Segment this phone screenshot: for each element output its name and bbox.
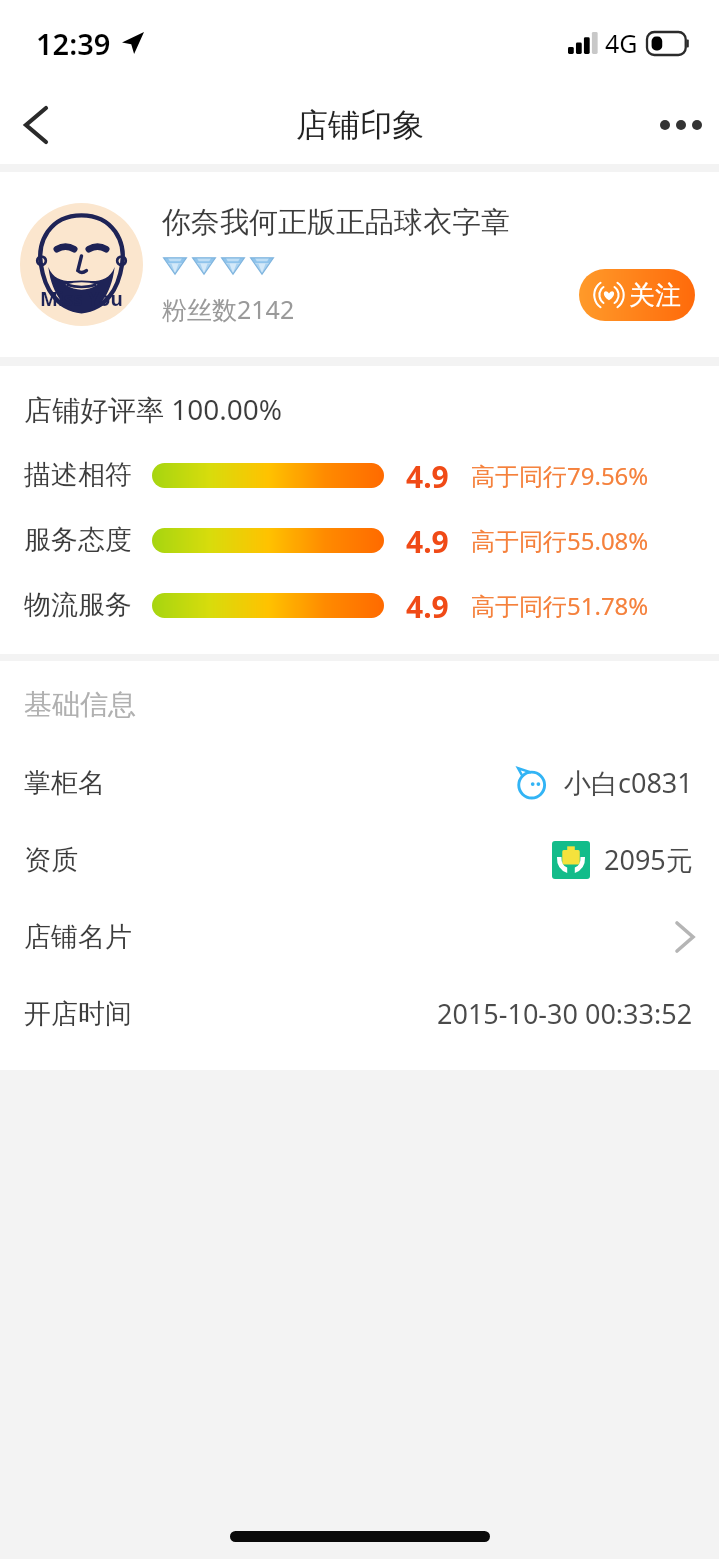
staticText: 店铺好评率 100.00% bbox=[24, 390, 283, 428]
staticText: 服务态度 bbox=[24, 523, 132, 557]
button[interactable]: 店铺名片 bbox=[0, 898, 719, 975]
staticText: 高于同行55.08% bbox=[471, 524, 649, 557]
staticText: 4.9 bbox=[406, 521, 449, 559]
staticText: 4.9 bbox=[406, 586, 449, 624]
button[interactable]: 关注 bbox=[579, 269, 695, 321]
staticText: 店铺印象 bbox=[296, 105, 424, 145]
staticText: 物流服务 bbox=[24, 588, 132, 622]
staticText: 小白c0831 bbox=[564, 764, 693, 801]
staticText: 基础信息 bbox=[24, 687, 136, 722]
staticText: 高于同行51.78% bbox=[471, 589, 649, 622]
staticText: 资质 bbox=[24, 843, 78, 877]
staticText: 关注 bbox=[629, 279, 681, 312]
button[interactable]: Back bbox=[0, 89, 72, 161]
staticText: 高于同行79.56% bbox=[471, 459, 649, 492]
button[interactable]: More options bbox=[643, 87, 719, 163]
staticText: 4G bbox=[605, 26, 638, 60]
staticText: 描述相符 bbox=[24, 458, 132, 492]
staticText: Miss You bbox=[40, 286, 123, 312]
staticText: 店铺名片 bbox=[24, 920, 132, 954]
staticText: 你奈我何正版正品球衣字章 bbox=[162, 204, 510, 241]
staticText: 2015-10-30 00:33:52 bbox=[437, 995, 693, 1032]
button[interactable]: Miss You bbox=[20, 203, 143, 326]
staticText: 开店时间 bbox=[24, 997, 132, 1031]
other: Open shop card bbox=[677, 923, 693, 951]
staticText: 粉丝数2142 bbox=[162, 292, 295, 326]
staticText: 4.9 bbox=[406, 456, 449, 494]
staticText: 掌柜名 bbox=[24, 766, 105, 800]
staticText: 2095元 bbox=[604, 841, 693, 878]
staticText: 12:39 bbox=[36, 24, 111, 63]
